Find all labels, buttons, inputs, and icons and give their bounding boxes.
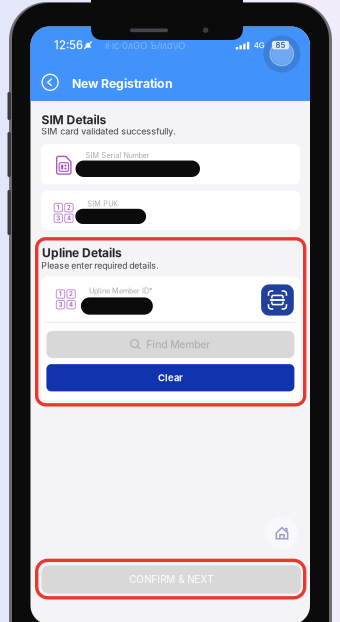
staticText: 2 [69, 290, 73, 298]
staticText: CONFIRM & NEXT [129, 573, 213, 585]
staticText: SIM card validated successfully. [41, 126, 176, 137]
staticText: ıl·ıc·0ʌGՕ Ƅ/ıʌɑ\ıՕ [105, 40, 185, 51]
staticText: 4G [254, 41, 265, 50]
button[interactable]: Home [30, 26, 310, 622]
staticText: SIM PUK [87, 199, 118, 208]
staticText: 1 [57, 204, 60, 211]
button[interactable]: Find Member [30, 26, 310, 622]
staticText: 12:56 [54, 38, 83, 52]
staticText: Upline Member ID* [89, 286, 153, 295]
staticText: Please enter required details. [41, 260, 158, 271]
staticText: 3 [58, 301, 62, 308]
staticText: SIM Details [41, 113, 106, 127]
staticText: New Registration [72, 76, 173, 91]
staticText: 85 [275, 40, 285, 50]
staticText: Clear [158, 372, 183, 383]
button[interactable]: Scan barcode [30, 26, 310, 622]
staticText: 3 [56, 214, 60, 222]
staticText: 4 [67, 214, 71, 222]
button[interactable]: Back [30, 26, 310, 622]
staticText: 1 [59, 290, 62, 298]
staticText: 4 [69, 301, 73, 308]
button[interactable]: CONFIRM & NEXT [30, 26, 310, 622]
staticText: Find Member [146, 338, 210, 351]
staticText: Upline Details [42, 246, 122, 260]
staticText: SIM Serial Number [85, 151, 149, 160]
button[interactable]: Clear [30, 26, 310, 622]
staticText: 2 [67, 204, 71, 211]
